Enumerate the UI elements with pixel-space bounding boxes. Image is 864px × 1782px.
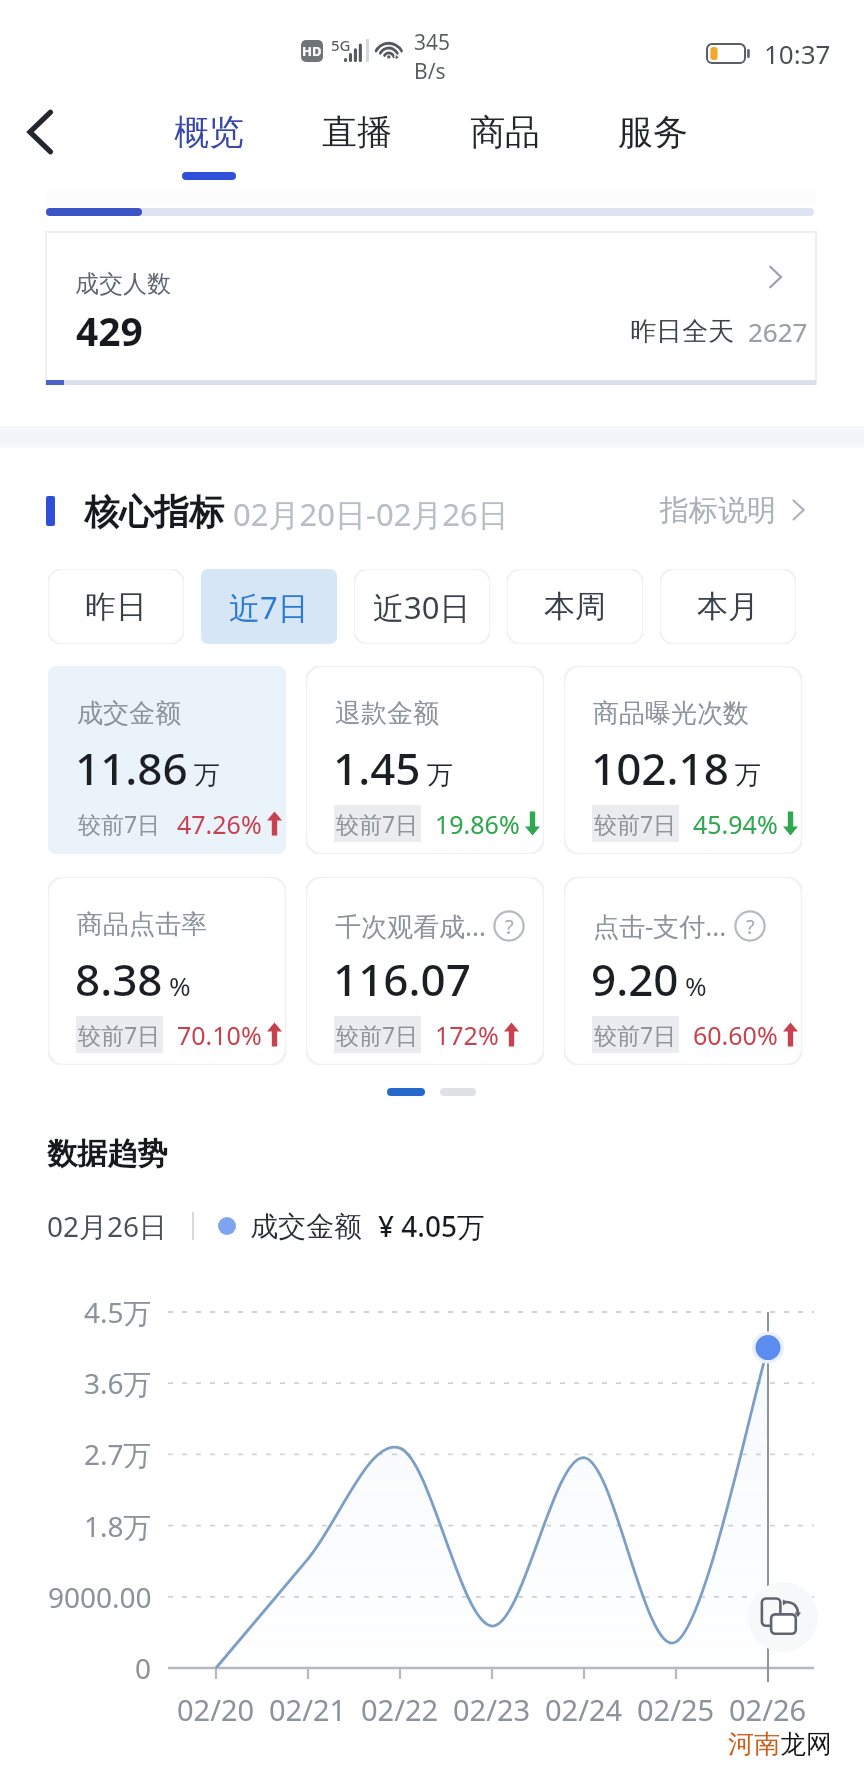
staticText: 116.07 bbox=[333, 949, 471, 1009]
staticText: 02/20 bbox=[177, 1690, 255, 1729]
button[interactable]: 服务 bbox=[599, 96, 707, 168]
staticText: 429 bbox=[76, 304, 143, 357]
staticText: 商品 bbox=[470, 110, 540, 154]
staticText: 02/21 bbox=[269, 1690, 347, 1729]
staticText: 3.6万 bbox=[84, 1364, 152, 1402]
button[interactable]: 指标说明 bbox=[660, 488, 812, 532]
staticText: 2.7万 bbox=[84, 1435, 152, 1473]
staticText: 02/25 bbox=[637, 1690, 715, 1729]
staticText: 19.86% bbox=[435, 807, 520, 841]
button[interactable]: 商品点击率 bbox=[48, 877, 286, 1065]
staticText: 1.8万 bbox=[84, 1507, 152, 1545]
staticText: 60.60% bbox=[693, 1018, 778, 1052]
staticText: 指标说明 bbox=[660, 492, 776, 529]
button[interactable]: 昨日 bbox=[48, 569, 184, 644]
staticText: 70.10% bbox=[177, 1018, 262, 1052]
button[interactable]: 成交金额 bbox=[48, 666, 286, 854]
staticText: 成交金额 bbox=[250, 1209, 362, 1244]
staticText: 成交金额 bbox=[77, 697, 181, 730]
staticText: ¥ 4.05万 bbox=[378, 1207, 485, 1245]
staticText: 服务 bbox=[618, 110, 688, 154]
staticText: 02/26 bbox=[729, 1690, 807, 1729]
staticText: 商品曝光次数 bbox=[593, 697, 749, 730]
staticText: 成交人数 bbox=[75, 269, 171, 299]
staticText: 02/23 bbox=[453, 1690, 531, 1729]
staticText: 45.94% bbox=[693, 807, 778, 841]
staticText: 退款金额 bbox=[335, 697, 439, 730]
staticText: 47.26% bbox=[177, 807, 262, 841]
staticText: 千次观看成... bbox=[335, 908, 486, 944]
staticText: 较前7日 bbox=[336, 1019, 419, 1050]
staticText: 4.5万 bbox=[84, 1293, 152, 1331]
staticText: 10:37 bbox=[764, 36, 831, 71]
button[interactable]: Back bbox=[2, 100, 78, 164]
staticText: % bbox=[169, 968, 191, 1003]
staticText: 近30日 bbox=[373, 586, 471, 628]
button[interactable]: 近30日 bbox=[354, 569, 490, 644]
button[interactable]: 成交人数 bbox=[46, 232, 816, 384]
staticText: 本月 bbox=[697, 587, 759, 626]
staticText: 11.86 bbox=[75, 738, 188, 798]
staticText: 较前7日 bbox=[594, 1019, 677, 1050]
staticText: 0 bbox=[135, 1649, 152, 1687]
staticText: 345 bbox=[414, 28, 451, 57]
button[interactable]: 商品 bbox=[451, 96, 559, 168]
staticText: 昨日全天 bbox=[630, 315, 734, 348]
button[interactable]: 直播 bbox=[303, 96, 411, 168]
staticText: 9.20 bbox=[591, 949, 679, 1009]
staticText: 近7日 bbox=[229, 586, 309, 628]
staticText: 较前7日 bbox=[78, 808, 161, 839]
button[interactable]: 概览 bbox=[155, 96, 263, 168]
staticText: 万 bbox=[427, 759, 453, 792]
staticText: 万 bbox=[735, 759, 761, 792]
staticText: 102.18 bbox=[591, 738, 729, 798]
staticText: 02/24 bbox=[545, 1690, 623, 1729]
staticText: 数据趋势 bbox=[47, 1135, 167, 1173]
staticText: 02月20日-02月26日 bbox=[233, 493, 509, 535]
staticText: 较前7日 bbox=[336, 808, 419, 839]
staticText: 河南 bbox=[728, 1728, 780, 1761]
staticText: 龙网 bbox=[780, 1728, 832, 1761]
staticText: 1.45 bbox=[333, 738, 421, 798]
staticText: ? bbox=[746, 913, 755, 940]
staticText: 点击-支付... bbox=[593, 908, 727, 944]
staticText: B/s bbox=[414, 57, 446, 86]
staticText: 万 bbox=[194, 759, 220, 792]
button[interactable]: 本周 bbox=[507, 569, 643, 644]
staticText: 02月26日 bbox=[47, 1207, 168, 1245]
staticText: 较前7日 bbox=[78, 1019, 161, 1050]
button[interactable]: 商品曝光次数 bbox=[564, 666, 802, 854]
staticText: 较前7日 bbox=[594, 808, 677, 839]
staticText: 2627 bbox=[748, 314, 808, 349]
staticText: 5G bbox=[331, 35, 351, 55]
staticText: 商品点击率 bbox=[77, 908, 207, 941]
staticText: 8.38 bbox=[75, 949, 163, 1009]
button[interactable]: 点击-支付... bbox=[564, 877, 802, 1065]
button[interactable]: Switch chart type bbox=[748, 1582, 818, 1652]
button[interactable]: 退款金额 bbox=[306, 666, 544, 854]
button[interactable]: 本月 bbox=[660, 569, 796, 644]
staticText: 02/22 bbox=[361, 1690, 439, 1729]
button[interactable]: 千次观看成... bbox=[306, 877, 544, 1065]
button[interactable]: 近7日 bbox=[201, 569, 337, 644]
staticText: 概览 bbox=[174, 110, 244, 154]
staticText: 本周 bbox=[544, 587, 606, 626]
staticText: 直播 bbox=[322, 110, 392, 154]
staticText: 9000.00 bbox=[48, 1578, 152, 1616]
staticText: 172% bbox=[435, 1018, 499, 1052]
staticText: % bbox=[685, 968, 707, 1003]
staticText: 昨日 bbox=[85, 587, 147, 626]
staticText: 核心指标 bbox=[84, 490, 224, 534]
staticText: HD bbox=[302, 42, 322, 60]
staticText: ? bbox=[505, 913, 514, 940]
